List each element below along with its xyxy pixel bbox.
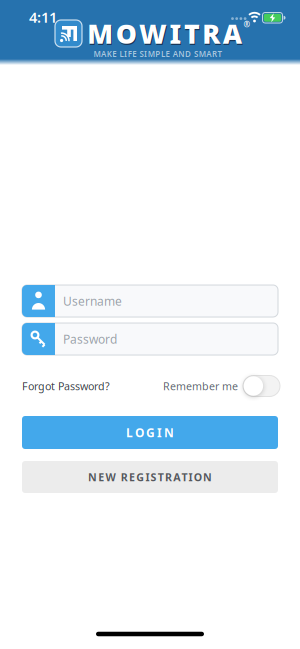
staticText: I (145, 470, 149, 484)
staticText: T (158, 470, 164, 484)
staticText: E (112, 49, 116, 59)
staticText: W (139, 16, 167, 51)
staticText: M (148, 49, 155, 59)
staticText: M (93, 49, 100, 59)
staticText: R (212, 49, 217, 59)
staticText: 4:11 (29, 7, 57, 27)
staticText: T (185, 17, 201, 52)
staticText: I (144, 49, 147, 59)
button[interactable]: Password (22, 323, 278, 355)
staticText: I (189, 470, 193, 484)
staticText: R (165, 470, 172, 484)
staticText: I (124, 49, 127, 59)
staticText: N (88, 470, 97, 484)
button[interactable]: Forgot Password? (22, 378, 122, 394)
staticText: S (139, 49, 143, 59)
staticText: A (173, 49, 178, 59)
staticText: N (203, 470, 212, 484)
staticText: O (116, 17, 137, 52)
staticText: A (101, 49, 106, 59)
staticText: T (217, 49, 222, 59)
staticText: E (165, 49, 169, 59)
button[interactable]: Remember me (243, 375, 280, 396)
staticText: F (128, 49, 132, 59)
staticText: Username (63, 293, 122, 309)
staticText: R (121, 470, 128, 484)
staticText: Remember me (163, 379, 238, 393)
staticText: S (151, 470, 157, 484)
staticText: E (132, 49, 136, 59)
button[interactable]: N (22, 461, 278, 493)
staticText: D (185, 49, 191, 59)
staticText: O (116, 16, 137, 51)
staticText: N (178, 49, 184, 59)
staticText: K (107, 49, 112, 59)
staticText: A (223, 16, 242, 51)
staticText: A (173, 470, 180, 484)
staticText: W (105, 470, 115, 484)
staticText: T (184, 16, 200, 51)
staticText: Forgot Password? (22, 379, 110, 393)
staticText: I (157, 424, 162, 440)
staticText: A (223, 17, 242, 52)
staticText: L (161, 49, 165, 59)
staticText: A (206, 49, 211, 59)
staticText: E (129, 470, 135, 484)
staticText: G (146, 424, 155, 440)
staticText: M (88, 17, 114, 52)
staticText: M (87, 16, 113, 51)
staticText: T (181, 470, 187, 484)
staticText: O (194, 470, 202, 484)
staticText: W (140, 17, 168, 52)
staticText: Password (63, 331, 117, 347)
button[interactable]: L (22, 416, 278, 449)
staticText: L (126, 424, 133, 440)
staticText: G (136, 470, 144, 484)
staticText: I (169, 16, 181, 51)
staticText: E (98, 470, 104, 484)
staticText: R (202, 16, 220, 51)
staticText: R (203, 17, 221, 52)
staticText: S (194, 49, 198, 59)
staticText: O (135, 424, 144, 440)
staticText: P (155, 49, 160, 59)
button[interactable]: Username (22, 285, 278, 317)
staticText: ® (243, 19, 250, 30)
staticText: L (119, 49, 123, 59)
staticText: I (170, 17, 182, 52)
staticText: M (199, 49, 206, 59)
staticText: N (164, 424, 174, 440)
